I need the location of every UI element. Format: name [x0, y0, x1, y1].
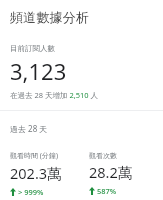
button[interactable]: 目前訂閱人數: [0, 44, 163, 100]
staticText: 587%: [97, 186, 117, 196]
staticText: 目前訂閱人數: [10, 44, 55, 53]
staticText: 3,123: [10, 56, 67, 86]
other: Increase: [10, 188, 16, 196]
button[interactable]: 觀看時間 (分鐘): [10, 151, 81, 197]
staticText: 觀看次數: [89, 151, 117, 160]
staticText: 28.2萬: [89, 162, 133, 182]
staticText: 在過去 28 天增加 2,510 人: [10, 90, 99, 100]
staticText: 觀看時間 (分鐘): [10, 151, 59, 161]
other: Increase: [89, 187, 95, 195]
staticText: 頻道數據分析: [10, 9, 90, 25]
staticText: 202.3萬: [10, 163, 62, 183]
staticText: 過去 28 天: [10, 123, 48, 134]
staticText: > 999%: [18, 187, 44, 197]
button[interactable]: 觀看次數: [89, 151, 163, 196]
